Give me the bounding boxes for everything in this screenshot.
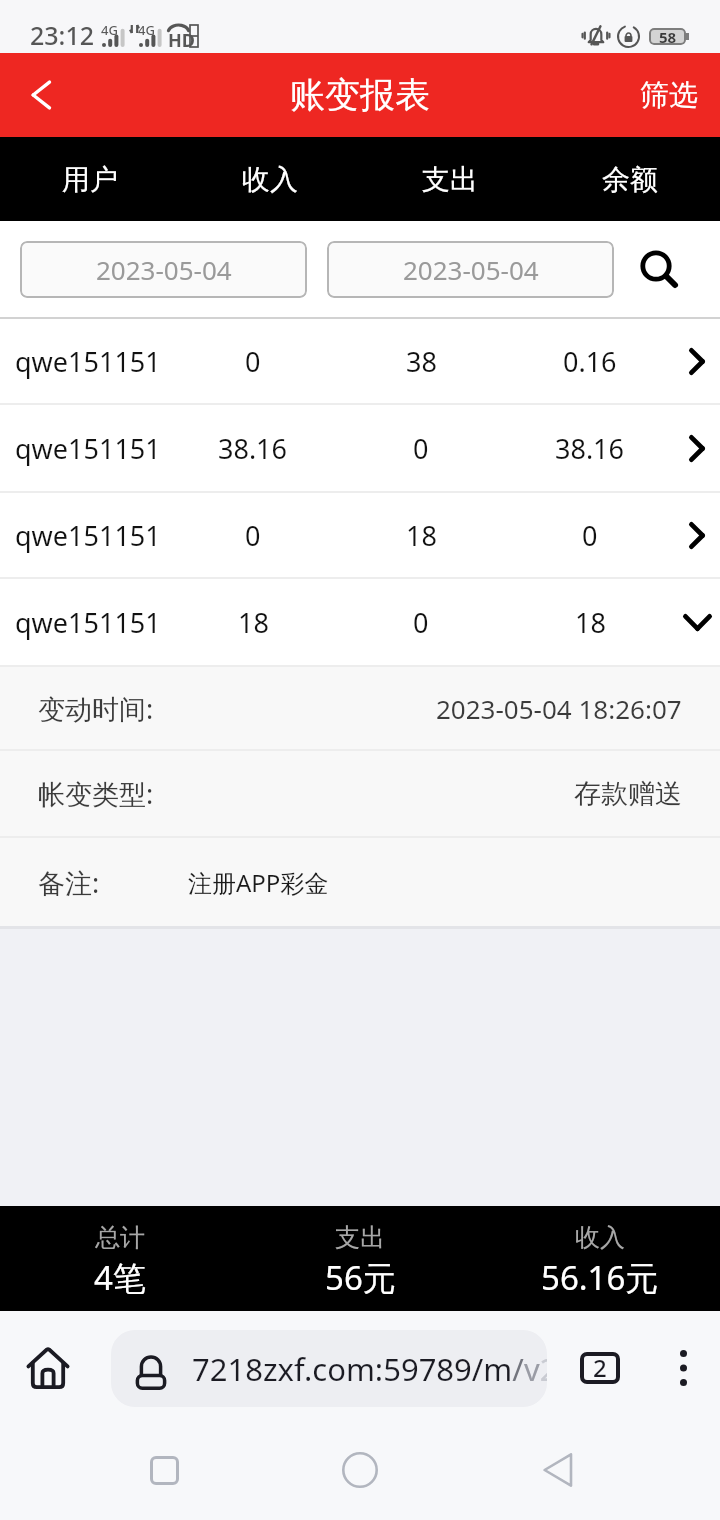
staticText: 58 [659, 28, 677, 44]
button[interactable]: Home [4, 1311, 92, 1424]
staticText: 2023-05-04 [403, 252, 539, 287]
staticText: 18 [406, 517, 437, 554]
other: Silent [582, 25, 610, 47]
button[interactable]: Search [614, 221, 720, 317]
button[interactable]: Back [0, 53, 84, 137]
button[interactable]: 2023-05-04 [20, 241, 307, 298]
button[interactable]: qwe151151 [0, 405, 720, 491]
staticText: 存款赠送 [574, 777, 682, 811]
button[interactable]: qwe151151 [0, 319, 720, 403]
button[interactable]: More options [646, 1311, 720, 1424]
button[interactable]: 支出 [360, 137, 540, 221]
staticText: 备注: [38, 864, 100, 901]
staticText: 0 [413, 430, 429, 467]
staticText: 38 [406, 343, 437, 380]
button[interactable]: Back [492, 1424, 620, 1520]
staticText: qwe151151 [15, 604, 161, 641]
staticText: 18 [238, 604, 269, 641]
staticText: 4笔 [94, 1255, 146, 1300]
staticText: HD [168, 28, 195, 50]
button[interactable]: 收入 [180, 137, 360, 221]
staticText: 收入 [242, 162, 298, 197]
button[interactable]: qwe151151 [0, 493, 720, 577]
button[interactable]: 2023-05-04 [327, 241, 614, 298]
staticText: 56元 [325, 1255, 396, 1300]
button[interactable]: 收入 [480, 1206, 720, 1311]
staticText: 7218zxf.com:59789/m/v2 [192, 1348, 547, 1390]
button[interactable]: 支出 [240, 1206, 480, 1311]
staticText: qwe151151 [15, 517, 161, 554]
staticText: 余额 [602, 162, 658, 197]
button[interactable]: 总计 [0, 1206, 240, 1311]
button[interactable]: Tabs [558, 1311, 642, 1424]
button[interactable]: Home [296, 1424, 424, 1520]
staticText: 0.16 [563, 343, 617, 380]
button[interactable]: Recents [100, 1424, 228, 1520]
staticText: 用户 [62, 162, 118, 197]
staticText: qwe151151 [15, 343, 161, 380]
staticText: 2023-05-04 [96, 252, 232, 287]
staticText: 23:12 [30, 18, 95, 52]
staticText: 总计 [95, 1222, 145, 1253]
button[interactable]: qwe151151 [0, 579, 720, 665]
button[interactable]: 余额 [540, 137, 720, 221]
staticText: 18 [575, 604, 606, 641]
staticText: 筛选 [640, 77, 698, 114]
button[interactable]: 用户 [0, 137, 180, 221]
staticText: 变动时间: [38, 690, 154, 727]
staticText: 0 [413, 604, 429, 641]
staticText: 0 [245, 343, 261, 380]
staticText: 2023-05-04 18:26:07 [436, 691, 682, 726]
staticText: 支出 [422, 162, 478, 197]
staticText: 2 [593, 1351, 607, 1383]
staticText: 支出 [335, 1222, 385, 1253]
staticText: 38.16 [555, 430, 625, 467]
staticText: 0 [582, 517, 598, 554]
staticText: 帐变类型: [38, 775, 154, 812]
staticText: 收入 [575, 1222, 625, 1253]
staticText: 38.16 [218, 430, 288, 467]
staticText: 0 [245, 517, 261, 554]
staticText: 账变报表 [290, 73, 430, 117]
staticText: qwe151151 [15, 430, 161, 467]
button[interactable]: 筛选 [640, 77, 698, 114]
staticText: 注册APP彩金 [188, 866, 329, 899]
button[interactable]: 7218zxf.com:59789/m/v2 [111, 1330, 547, 1407]
other: Rotation lock [617, 25, 640, 48]
staticText: 56.16元 [541, 1255, 659, 1300]
staticText: 4G [138, 21, 155, 39]
staticText: 4G [101, 21, 118, 39]
